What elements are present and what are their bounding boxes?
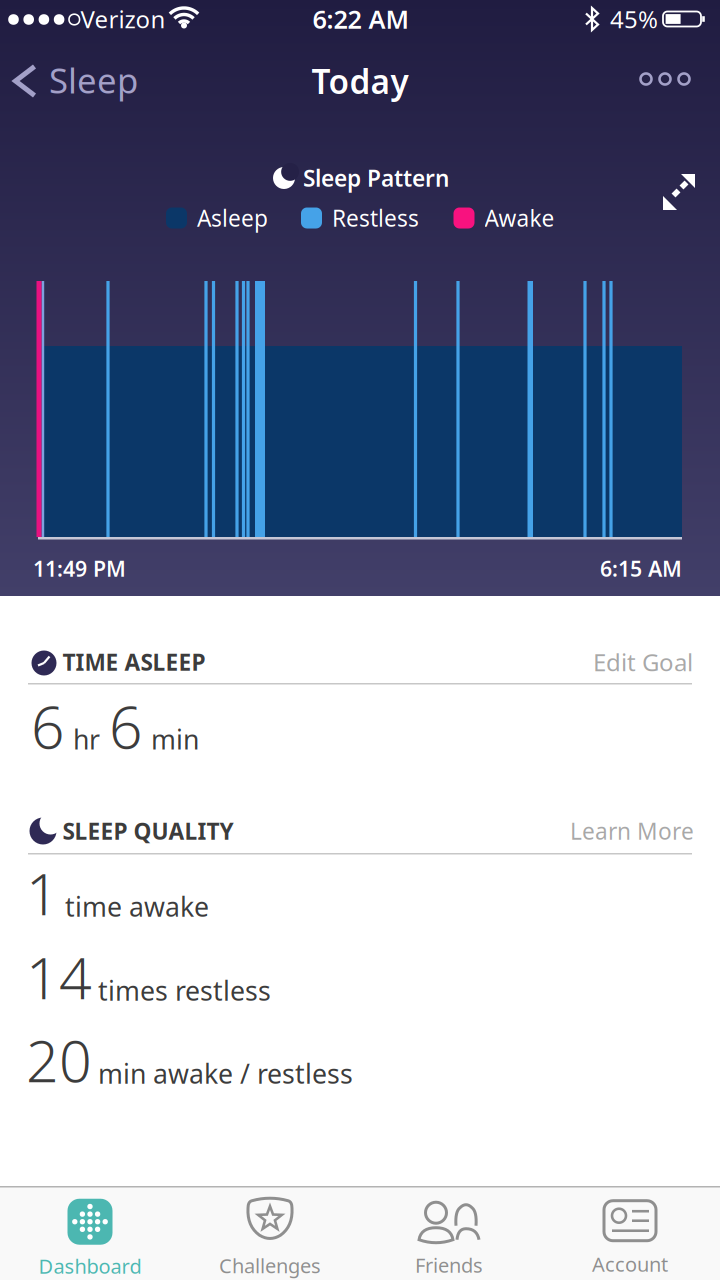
staticText: Restless: [332, 203, 419, 233]
staticText: Today: [311, 59, 408, 103]
staticText: Sleep Pattern: [303, 163, 449, 193]
button[interactable]: Dashboard: [38, 1199, 141, 1279]
staticText: SLEEP QUALITY: [62, 816, 233, 846]
staticText: 6:22 AM: [312, 2, 409, 36]
staticText: Account: [592, 1251, 668, 1277]
staticText: Edit Goal: [593, 646, 693, 678]
staticText: 14: [26, 939, 92, 1015]
staticText: 11:49 PM: [33, 554, 126, 583]
staticText: min: [151, 721, 199, 757]
staticText: 6:15 AM: [600, 554, 682, 583]
staticText: 20: [26, 1022, 92, 1098]
staticText: Verizon: [80, 3, 165, 35]
staticText: Awake: [484, 203, 554, 233]
staticText: times restless: [98, 973, 271, 1008]
staticText: Challenges: [219, 1252, 321, 1279]
staticText: 45%: [610, 3, 658, 35]
staticText: Asleep: [197, 203, 268, 233]
button[interactable]: Edit Goal: [593, 646, 693, 678]
staticText: TIME ASLEEP: [62, 647, 205, 677]
staticText: Dashboard: [38, 1253, 141, 1279]
staticText: Sleep: [49, 57, 138, 103]
button[interactable]: Account: [592, 1201, 668, 1277]
staticText: Learn More: [570, 816, 694, 846]
button[interactable]: Challenges: [219, 1199, 321, 1279]
staticText: min awake / restless: [98, 1056, 353, 1091]
button[interactable]: Expand: [662, 173, 698, 210]
staticText: hr: [73, 721, 100, 757]
staticText: 1: [26, 855, 59, 931]
staticText: time awake: [65, 889, 209, 924]
button[interactable]: Learn More: [570, 816, 694, 846]
staticText: 6: [109, 687, 142, 765]
button[interactable]: Friends: [415, 1200, 483, 1278]
button[interactable]: More: [640, 73, 689, 84]
staticText: Friends: [415, 1252, 483, 1278]
button[interactable]: Back: [12, 63, 142, 99]
staticText: 6: [31, 687, 64, 765]
